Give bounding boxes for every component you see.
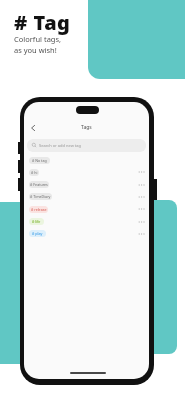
staticText: # No tag (32, 158, 47, 163)
staticText: # TimeDiary (30, 194, 51, 199)
staticText: Search or add new tag (39, 143, 81, 148)
button[interactable] (31, 125, 35, 131)
staticText: # hi (31, 170, 38, 175)
button[interactable]: # hi (29, 169, 39, 176)
button[interactable]: Search or add new tag (27, 139, 146, 152)
button[interactable]: # play (29, 230, 46, 237)
staticText: Colorful tags, (14, 34, 62, 44)
button[interactable]: # life (29, 218, 44, 225)
staticText: # Tag (14, 9, 71, 36)
button[interactable]: # TimeDiary (29, 193, 52, 200)
staticText: as you wish! (14, 45, 57, 55)
staticText: Tags (81, 124, 92, 131)
staticText: # life (32, 219, 41, 224)
staticText: # play (32, 231, 43, 236)
staticText: # release (31, 207, 47, 212)
button[interactable]: # Features (29, 181, 49, 188)
staticText: # Features (30, 182, 48, 187)
button[interactable]: # No tag (29, 157, 50, 164)
button[interactable]: # release (29, 206, 48, 213)
